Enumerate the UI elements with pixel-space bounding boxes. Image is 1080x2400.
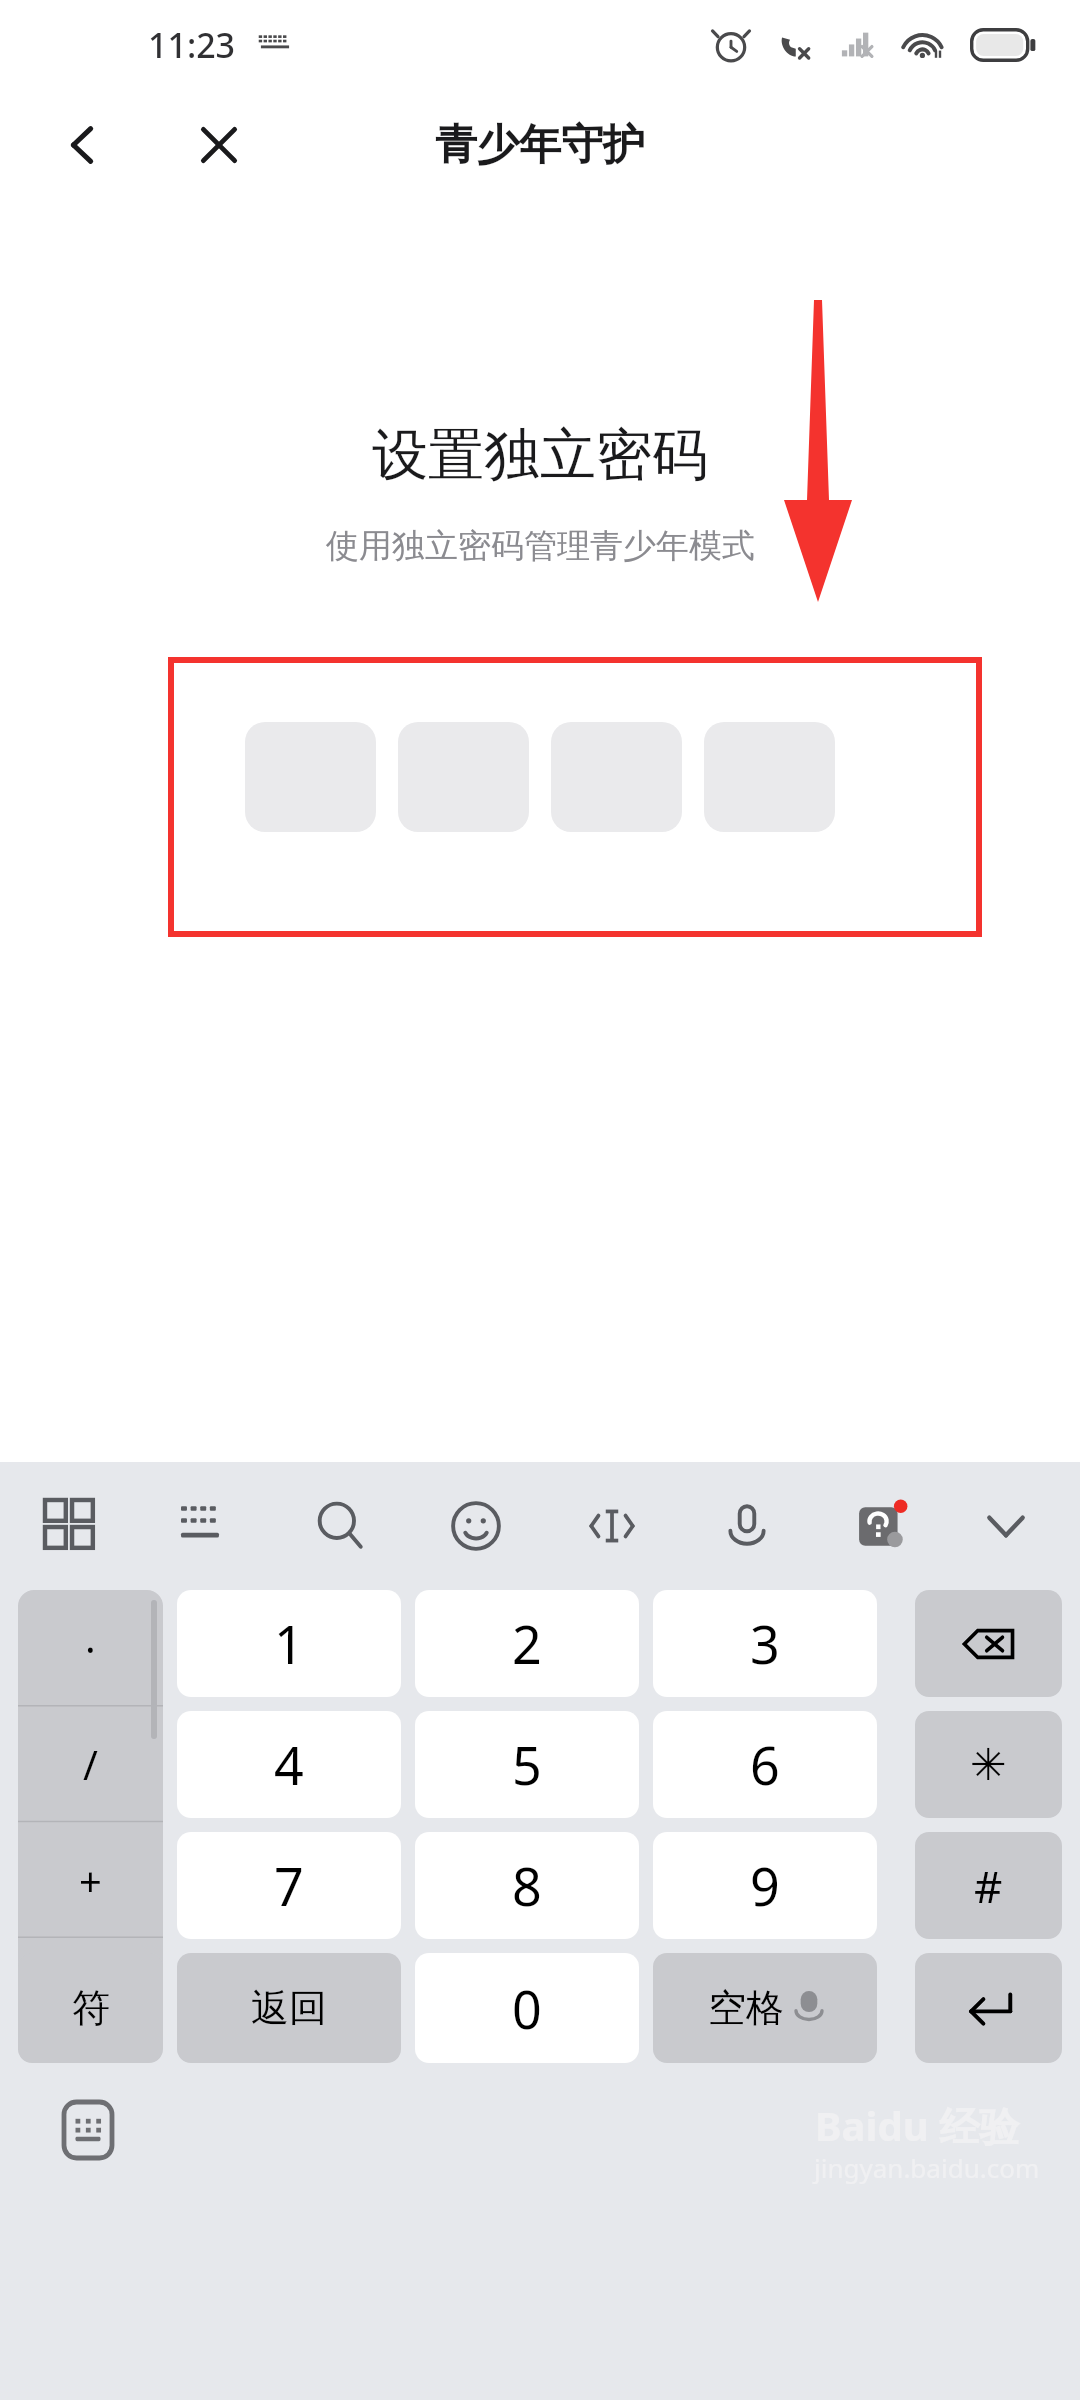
staticText: jingyan.baidu.com bbox=[814, 2150, 1040, 2185]
staticText: − bbox=[79, 1969, 102, 2023]
button[interactable]: Backspace bbox=[915, 1590, 1062, 1697]
staticText: 6 bbox=[750, 1729, 780, 1800]
button[interactable]: Edit text bbox=[560, 1474, 664, 1578]
staticText: 11:23 bbox=[148, 22, 236, 68]
button[interactable]: ✳ bbox=[915, 1711, 1062, 1818]
staticText: 7 bbox=[274, 1850, 304, 1921]
button[interactable]: 5 bbox=[415, 1711, 639, 1818]
button[interactable]: Voice input bbox=[695, 1474, 799, 1578]
button[interactable]: 0 bbox=[415, 1953, 639, 2063]
staticText: ✳ bbox=[970, 1739, 1007, 1790]
button[interactable]: Enter bbox=[915, 1953, 1062, 2063]
staticText: 0 bbox=[512, 1973, 542, 2044]
staticText: / bbox=[83, 1737, 98, 1791]
button[interactable]: 4 bbox=[177, 1711, 401, 1818]
button[interactable]: Apps bbox=[19, 1474, 123, 1578]
button[interactable]: 2 bbox=[415, 1590, 639, 1697]
button[interactable]: Help bbox=[831, 1474, 935, 1578]
staticText: Baidu 经验 bbox=[815, 2098, 1020, 2153]
button[interactable]: Keyboard bbox=[155, 1474, 259, 1578]
button[interactable]: # bbox=[915, 1832, 1062, 1939]
staticText: 5 bbox=[512, 1729, 542, 1800]
button[interactable]: 9 bbox=[653, 1832, 877, 1939]
button[interactable]: + bbox=[18, 1822, 163, 1938]
staticText: 2 bbox=[512, 1608, 542, 1679]
staticText: 空格 bbox=[708, 1984, 784, 2032]
button[interactable]: PIN digit 1 bbox=[245, 722, 376, 832]
button[interactable]: 7 bbox=[177, 1832, 401, 1939]
button[interactable]: Hide keyboard bbox=[954, 1474, 1058, 1578]
staticText: 9 bbox=[750, 1850, 780, 1921]
button[interactable]: · bbox=[18, 1590, 163, 1706]
staticText: 8 bbox=[512, 1850, 542, 1921]
button[interactable]: Switch keyboard bbox=[48, 2090, 128, 2170]
button[interactable]: Search bbox=[289, 1474, 393, 1578]
staticText: · bbox=[85, 1621, 96, 1675]
staticText: 3 bbox=[750, 1608, 780, 1679]
staticText: 4 bbox=[274, 1729, 304, 1800]
staticText: 1 bbox=[274, 1608, 304, 1679]
staticText: 使用独立密码管理青少年模式 bbox=[326, 525, 755, 567]
staticText: 设置独立密码 bbox=[372, 420, 708, 491]
staticText: 返回 bbox=[251, 1984, 327, 2032]
button[interactable]: PIN digit 4 bbox=[704, 722, 835, 832]
staticText: # bbox=[974, 1856, 1003, 1916]
button[interactable]: Emoji bbox=[424, 1474, 528, 1578]
button[interactable]: 符 bbox=[18, 1953, 163, 2063]
button[interactable]: 返回 bbox=[177, 1953, 401, 2063]
staticText: 青少年守护 bbox=[435, 119, 645, 172]
button[interactable]: PIN digit 2 bbox=[398, 722, 529, 832]
button[interactable]: 1 bbox=[177, 1590, 401, 1697]
button[interactable]: 空格 bbox=[653, 1953, 877, 2063]
button[interactable]: 6 bbox=[653, 1711, 877, 1818]
staticText: 符 bbox=[72, 1984, 110, 2032]
staticText: + bbox=[79, 1853, 102, 1907]
button[interactable]: Back bbox=[36, 98, 130, 192]
button[interactable]: / bbox=[18, 1706, 163, 1822]
button[interactable]: − bbox=[18, 1938, 163, 2053]
button[interactable]: 8 bbox=[415, 1832, 639, 1939]
button[interactable]: Close bbox=[172, 98, 266, 192]
button[interactable]: 3 bbox=[653, 1590, 877, 1697]
button[interactable]: PIN digit 3 bbox=[551, 722, 682, 832]
